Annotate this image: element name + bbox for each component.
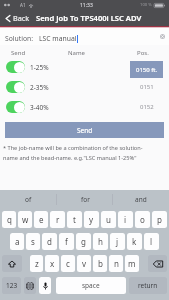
staticText: h (98, 236, 103, 247)
button[interactable]: return (129, 277, 167, 294)
staticText: space (82, 281, 100, 290)
staticText: Send (11, 49, 26, 57)
staticText: c (66, 258, 70, 269)
button[interactable]: w (18, 211, 32, 228)
button[interactable]: c (61, 255, 75, 272)
button[interactable]: f (59, 233, 74, 250)
staticText: 0151 (140, 83, 154, 91)
button[interactable]: 2-35% (0, 77, 169, 97)
button[interactable] (6, 101, 25, 113)
staticText: 3-40% (30, 103, 49, 112)
button[interactable]: k (127, 233, 142, 250)
button[interactable]: s (26, 233, 40, 250)
button[interactable]: y (84, 211, 99, 228)
staticText: p (157, 214, 162, 225)
staticText: Solution: (5, 34, 34, 43)
staticText: k (132, 236, 137, 247)
button[interactable]: n (109, 255, 123, 272)
button[interactable]: l (144, 233, 159, 250)
staticText: Pos. (137, 49, 149, 57)
staticText: Send Job To TPS400i LSC ADV (36, 13, 142, 23)
button[interactable]: h (93, 233, 108, 250)
staticText: A1 (20, 2, 26, 8)
button[interactable]: x (45, 255, 59, 272)
button[interactable]: i (118, 211, 133, 228)
staticText: i (124, 214, 127, 225)
staticText: n (114, 258, 119, 269)
staticText: d (47, 236, 52, 247)
button[interactable] (6, 81, 25, 93)
staticText: g (81, 236, 86, 247)
button[interactable]: o (135, 211, 150, 228)
staticText: j (116, 236, 119, 247)
button[interactable]: 1-25% (0, 57, 169, 77)
staticText: Name (68, 49, 85, 57)
staticText: and (135, 195, 147, 204)
staticText: q (7, 214, 12, 225)
button[interactable]: v (77, 255, 91, 272)
staticText: 0150 ft. (136, 66, 158, 74)
button[interactable]: r (50, 211, 65, 228)
staticText: LSC manual (39, 34, 77, 43)
staticText: y (89, 214, 94, 225)
staticText: l (150, 236, 153, 247)
button[interactable]: u (101, 211, 116, 228)
staticText: s (31, 236, 35, 247)
button[interactable]: 123 (2, 277, 21, 294)
staticText: 1-25% (30, 63, 49, 72)
button[interactable]: t (67, 211, 82, 228)
button[interactable]: z (30, 255, 43, 272)
button[interactable]: a (10, 233, 24, 250)
staticText: f (65, 236, 68, 247)
staticText: 0152 (140, 103, 154, 111)
staticText: for (81, 195, 90, 204)
staticText: z (35, 258, 39, 269)
button[interactable]: e (34, 211, 48, 228)
staticText: 100 % (140, 2, 152, 8)
button[interactable]: g (76, 233, 91, 250)
staticText: b (98, 258, 103, 269)
staticText: m (128, 258, 136, 269)
staticText: Send (77, 126, 93, 135)
staticText: name and the bead-name. e.g."LSC manual … (3, 154, 137, 162)
button[interactable]: Send (5, 122, 164, 138)
staticText: x (50, 258, 55, 269)
staticText: a (15, 236, 20, 247)
button[interactable]: Shift (2, 255, 22, 272)
staticText: 123 (6, 281, 18, 290)
staticText: * The job-name will be a combination of … (3, 144, 143, 152)
button[interactable]: Back (0, 10, 32, 26)
staticText: e (39, 214, 44, 225)
staticText: 2-35% (30, 83, 49, 92)
button[interactable]: m (125, 255, 139, 272)
button[interactable]: q (2, 211, 16, 228)
button[interactable]: Dictation (39, 277, 51, 294)
button[interactable]: Backspace (148, 255, 167, 272)
button[interactable]: of (0, 190, 57, 209)
button[interactable]: Switch keyboard (24, 277, 36, 294)
staticText: Back (13, 13, 30, 23)
staticText: w (22, 214, 29, 225)
button[interactable]: b (93, 255, 107, 272)
button[interactable]: space (56, 277, 126, 294)
button[interactable]: d (42, 233, 57, 250)
staticText: u (106, 214, 111, 225)
button[interactable]: p (152, 211, 167, 228)
button[interactable]: and (113, 190, 169, 209)
staticText: of (25, 195, 32, 204)
staticText: 11:33 (80, 2, 93, 9)
button[interactable]: for (57, 190, 113, 209)
button[interactable]: j (110, 233, 125, 250)
staticText: r (56, 214, 60, 225)
button[interactable] (6, 61, 25, 73)
staticText: t (73, 214, 76, 225)
staticText: v (82, 258, 87, 269)
staticText: o (140, 214, 145, 225)
staticText: return (138, 281, 158, 290)
button[interactable]: 3-40% (0, 97, 169, 117)
button[interactable]: Clear text (159, 33, 166, 40)
